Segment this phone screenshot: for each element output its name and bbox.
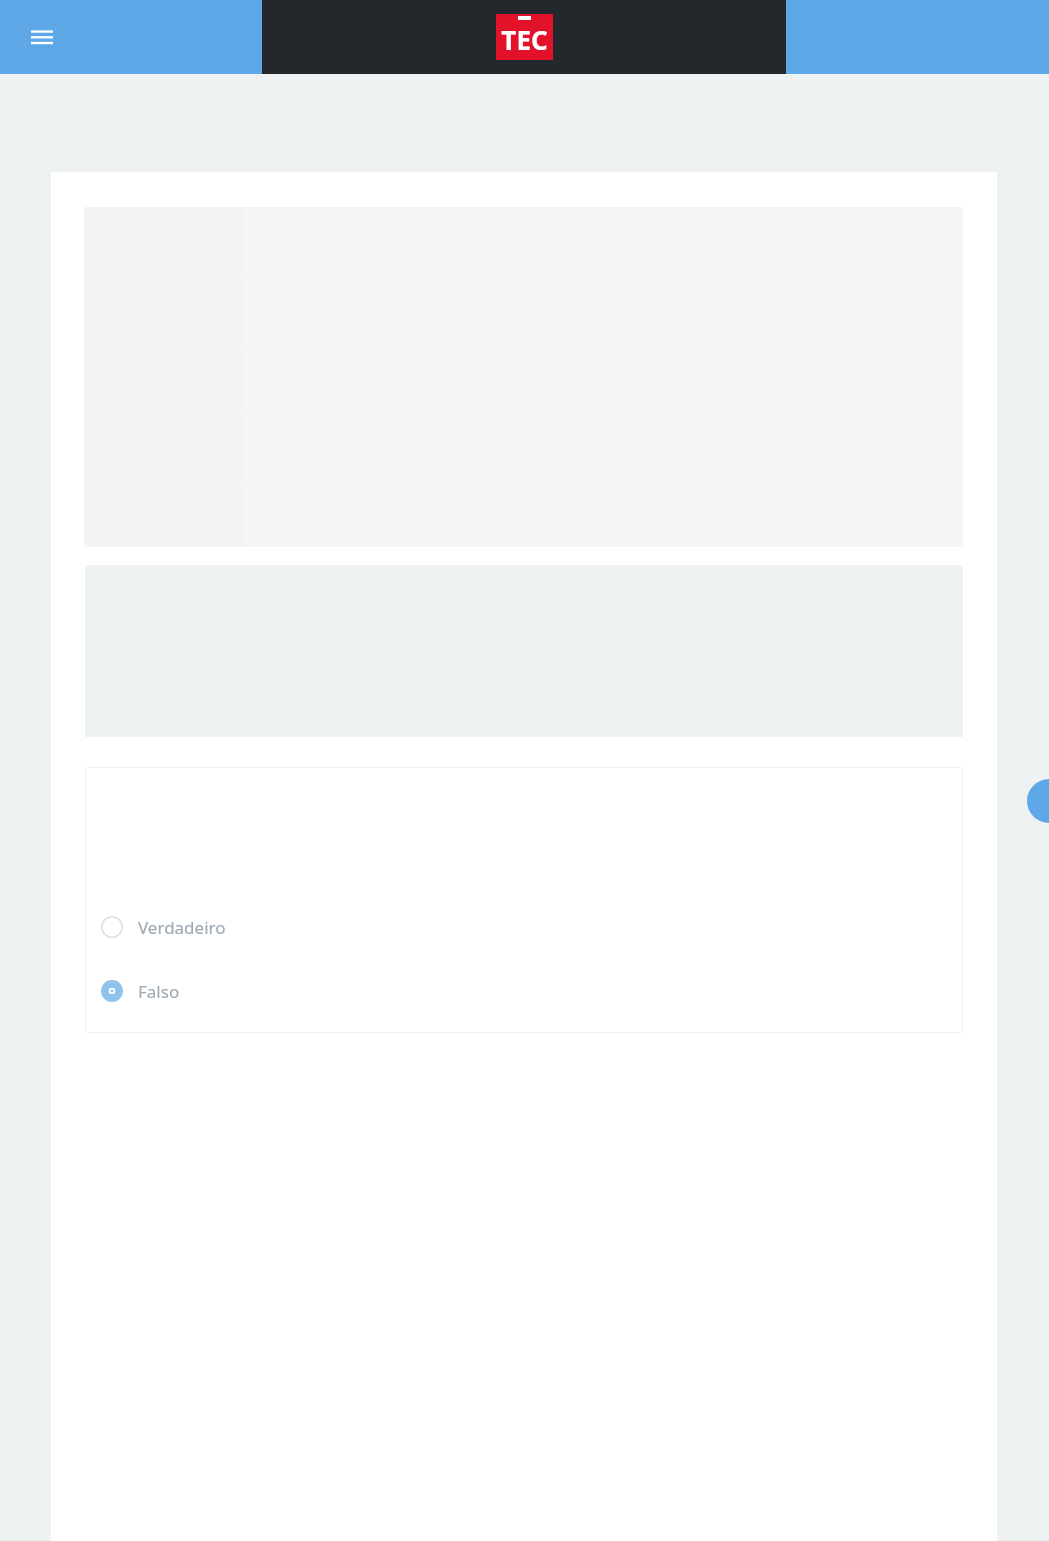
staticText: Falso	[138, 980, 180, 1003]
button[interactable]: TEC home	[496, 14, 553, 60]
staticText: TEC	[496, 22, 553, 57]
button[interactable]: Help	[1027, 779, 1049, 823]
button[interactable]: Falso	[85, 971, 963, 1011]
button[interactable]: Open navigation menu	[18, 13, 66, 61]
staticText: Verdadeiro	[138, 916, 226, 939]
button[interactable]: Verdadeiro	[85, 907, 963, 947]
